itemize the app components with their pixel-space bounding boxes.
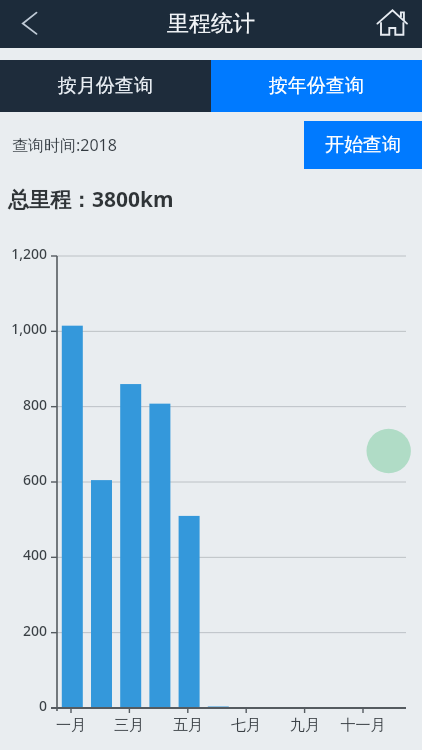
staticText: 十一月 (333, 716, 393, 735)
staticText: 1,000 (0, 319, 47, 338)
staticText: 五月 (158, 716, 218, 735)
staticText: 三月 (99, 716, 159, 735)
staticText: 800 (0, 395, 47, 414)
staticText: 开始查询 (325, 133, 401, 157)
button[interactable]: 按年份查询 (211, 60, 422, 112)
button[interactable]: 开始查询 (304, 121, 422, 169)
staticText: 总里程：3800km (8, 185, 174, 214)
staticText: 200 (0, 621, 47, 640)
staticText: 查询时间:2018 (12, 134, 117, 156)
staticText: 九月 (275, 716, 335, 735)
staticText: 按月份查询 (58, 74, 153, 98)
button[interactable]: Home (374, 0, 422, 48)
staticText: 里程统计 (167, 10, 255, 38)
staticText: 0 (0, 696, 47, 715)
button[interactable]: Back (0, 0, 48, 48)
staticText: 按年份查询 (269, 74, 364, 98)
staticText: 七月 (216, 716, 276, 735)
staticText: 600 (0, 470, 47, 489)
staticText: 1,200 (0, 244, 47, 263)
staticText: 一月 (41, 716, 101, 735)
button[interactable]: 按月份查询 (0, 60, 211, 112)
staticText: 400 (0, 545, 47, 564)
